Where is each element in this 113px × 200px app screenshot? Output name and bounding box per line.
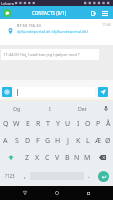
staticText: M xyxy=(84,153,91,163)
button[interactable]: Log out xyxy=(88,8,98,18)
button[interactable]: P xyxy=(93,115,103,132)
button[interactable]: Backspace xyxy=(92,149,113,166)
button[interactable]: W xyxy=(11,115,22,132)
button[interactable]: Æ xyxy=(93,132,103,149)
button[interactable]: O xyxy=(83,115,93,132)
button[interactable]: K xyxy=(73,132,83,149)
staticText: ?123 xyxy=(5,173,15,179)
button[interactable]: R xyxy=(33,115,43,132)
staticText: N xyxy=(74,153,80,163)
button[interactable]: 17:44:00 Hej, hvad kan jeg hjælper med ? xyxy=(1,49,99,60)
staticText: U xyxy=(65,119,71,129)
button[interactable]: F xyxy=(33,132,43,149)
staticText: 17:44 xyxy=(102,22,111,27)
button[interactable]: V xyxy=(52,149,62,166)
staticText: dj/kundeportal.dk (dj/kundeportal.dk) xyxy=(17,29,88,34)
staticText: E xyxy=(26,119,30,129)
staticText: 17:44:00 Hej, hvad kan jeg hjælper med ? xyxy=(3,52,80,57)
staticText: A xyxy=(3,136,8,146)
button[interactable]: Recents xyxy=(81,186,95,200)
staticText: B xyxy=(65,153,70,163)
button[interactable]: A xyxy=(0,132,11,149)
button[interactable]: Enter xyxy=(98,171,109,182)
button[interactable]: Ø xyxy=(103,132,113,149)
button[interactable]: G xyxy=(43,132,53,149)
staticText: S xyxy=(15,136,19,146)
staticText: G xyxy=(45,136,51,146)
staticText: Æ xyxy=(95,136,102,146)
staticText: Ø xyxy=(105,136,111,146)
button[interactable]: Contact avatar xyxy=(3,9,11,17)
staticText: V xyxy=(55,153,60,163)
staticText: L xyxy=(86,136,90,146)
button[interactable]: D xyxy=(22,132,33,149)
button[interactable]: Y xyxy=(53,115,63,132)
button[interactable]: ?123 xyxy=(0,166,20,186)
staticText: I xyxy=(77,119,80,129)
staticText: K xyxy=(76,136,81,146)
staticText: . xyxy=(88,171,90,181)
staticText: , xyxy=(24,171,26,181)
staticText: Lebara xyxy=(1,1,14,6)
staticText: T xyxy=(46,119,50,129)
button[interactable]: X xyxy=(32,149,42,166)
staticText: P xyxy=(96,119,101,129)
button[interactable]: Voice input xyxy=(99,101,113,115)
button[interactable]: L xyxy=(83,132,93,149)
button[interactable]: B xyxy=(62,149,72,166)
button[interactable]: H xyxy=(53,132,63,149)
button[interactable]: I xyxy=(73,115,83,132)
staticText: C xyxy=(45,153,50,163)
button[interactable]: Home xyxy=(50,186,64,200)
button[interactable]: Det xyxy=(66,101,99,115)
staticText: Å xyxy=(106,119,111,129)
button[interactable]: N xyxy=(72,149,82,166)
staticText: D xyxy=(25,136,31,146)
staticText: J xyxy=(67,136,69,146)
button[interactable]: J xyxy=(63,132,73,149)
staticText: Og xyxy=(13,105,21,112)
button[interactable]: Q xyxy=(0,115,11,132)
button[interactable] xyxy=(15,87,95,97)
button[interactable]: . xyxy=(84,166,94,186)
staticText: X xyxy=(35,153,40,163)
button[interactable]: Og xyxy=(0,101,33,115)
button[interactable]: U xyxy=(63,115,73,132)
button[interactable]: T xyxy=(43,115,53,132)
staticText: F xyxy=(36,136,40,146)
button[interactable]: Back xyxy=(18,186,32,200)
staticText: 87 60 156.33 xyxy=(17,23,41,28)
button[interactable]: , xyxy=(20,166,30,186)
button[interactable]: I xyxy=(33,101,66,115)
button[interactable]: E xyxy=(22,115,33,132)
button[interactable]: Shift xyxy=(0,149,22,166)
staticText: Det xyxy=(78,105,87,112)
staticText: W xyxy=(13,119,20,129)
staticText: Q xyxy=(3,119,9,129)
staticText: Y xyxy=(56,119,60,129)
staticText: H xyxy=(55,136,61,146)
button[interactable]: Camera xyxy=(2,87,12,97)
button[interactable]: M xyxy=(82,149,92,166)
button[interactable]: S xyxy=(11,132,22,149)
button[interactable]: C xyxy=(42,149,52,166)
staticText: R xyxy=(36,119,41,129)
button[interactable]: Menu xyxy=(100,8,110,18)
button[interactable]: Å xyxy=(103,115,113,132)
staticText: O xyxy=(85,119,91,129)
staticText: CONTACTS (0/1) xyxy=(32,10,67,16)
button[interactable]: Z xyxy=(22,149,32,166)
staticText: I xyxy=(49,105,51,112)
staticText: Z xyxy=(25,153,30,163)
button[interactable]: Send xyxy=(98,87,108,97)
